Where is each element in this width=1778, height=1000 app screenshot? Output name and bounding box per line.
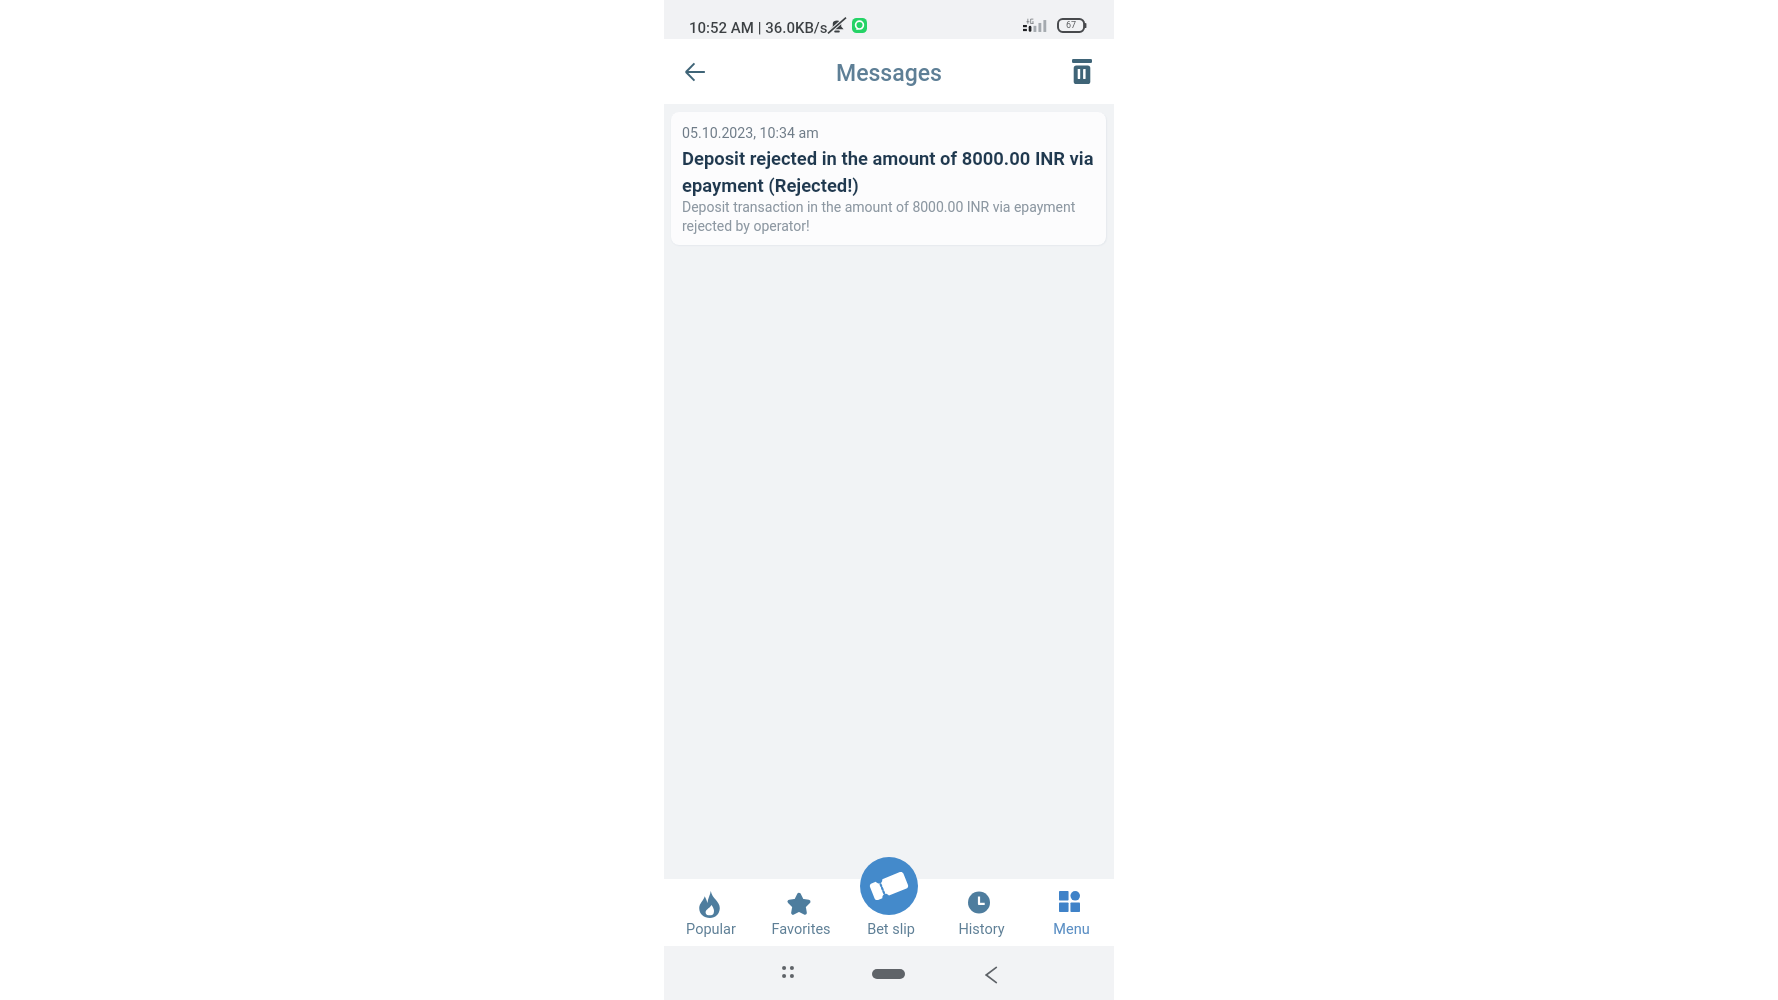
staticText: Messages <box>836 60 942 87</box>
button[interactable]: Back <box>984 965 998 985</box>
button[interactable]: Menu <box>1024 879 1114 946</box>
staticText: History <box>958 921 1005 938</box>
button[interactable]: Favorites <box>754 879 844 946</box>
staticText: 05.10.2023, 10:34 am <box>682 125 819 142</box>
staticText: Deposit rejected in the amount of 8000.0… <box>682 148 1095 196</box>
button[interactable]: Recent apps <box>781 965 795 979</box>
button[interactable]: 05.10.2023, 10:34 am <box>671 112 1106 245</box>
button[interactable]: Back <box>683 59 709 85</box>
staticText: Menu <box>1053 921 1090 938</box>
staticText: Popular <box>686 921 736 938</box>
button[interactable]: Delete all messages <box>1072 59 1092 84</box>
staticText: Bet slip <box>867 921 915 938</box>
button[interactable]: Bet slip <box>844 879 934 946</box>
staticText: Deposit transaction in the amount of 800… <box>682 199 1095 234</box>
staticText: 10:52 AM | 36.0KB/s <box>689 19 828 37</box>
button[interactable]: History <box>934 879 1024 946</box>
button[interactable]: Popular <box>664 879 754 946</box>
staticText: 67 <box>1066 20 1077 31</box>
staticText: Favorites <box>771 921 831 938</box>
button[interactable]: Bet slip <box>860 857 918 915</box>
button[interactable]: Home <box>872 969 905 979</box>
